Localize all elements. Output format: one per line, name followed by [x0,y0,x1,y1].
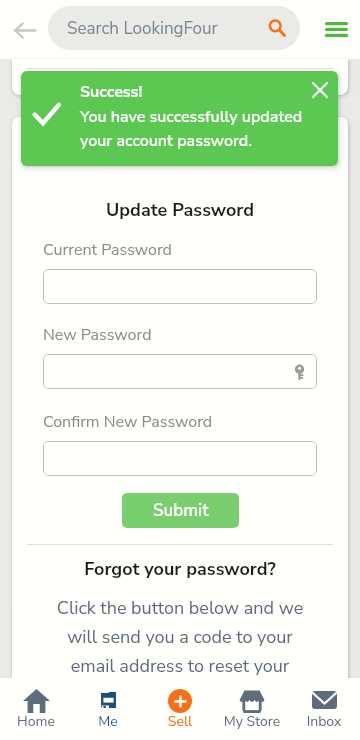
staticText: You have successfully updated your accou… [80,106,303,151]
button[interactable]: Submit [122,493,239,528]
staticText: Update Password [12,198,348,223]
staticText: Me [72,712,144,731]
button[interactable] [43,441,317,476]
button[interactable]: Back [6,11,44,49]
button[interactable] [43,354,317,389]
staticText: Search LookingFour [67,17,218,40]
staticText: New Password [43,324,152,346]
staticText: Confirm New Password [43,411,213,433]
staticText: Forgot your password? [12,557,348,582]
staticText: Submit [153,499,209,522]
button[interactable] [43,269,317,304]
staticText: Success! [80,81,143,103]
button[interactable]: My Store [216,678,288,740]
staticText: Sell [144,712,216,731]
staticText: Inbox [288,712,360,731]
button[interactable]: Home [0,678,72,740]
staticText: Current Password [43,239,172,261]
button[interactable]: Sell [144,678,216,740]
button[interactable]: Menu [318,11,354,47]
staticText: My Store [216,712,288,731]
button[interactable]: Search LookingFour [48,6,300,50]
staticText: Click the button below and we will send … [54,596,306,708]
button[interactable]: Close [306,76,334,104]
staticText: Home [0,712,72,731]
button[interactable]: Inbox [288,678,360,740]
button[interactable]: Me [72,678,144,740]
